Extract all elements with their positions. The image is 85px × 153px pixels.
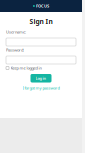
staticText: Password: xyxy=(6,47,24,53)
staticText: Keep me logged in xyxy=(10,65,41,71)
staticText: I forgot my password xyxy=(22,85,59,91)
button[interactable]: I forgot my password xyxy=(6,85,76,90)
staticText: Login xyxy=(35,76,46,81)
staticText: FOCUS xyxy=(36,3,49,9)
staticText: Username: xyxy=(6,29,26,35)
button[interactable]: Keep me logged in xyxy=(6,65,76,71)
button[interactable]: Login xyxy=(30,74,51,82)
staticText: Sign In xyxy=(29,17,52,26)
